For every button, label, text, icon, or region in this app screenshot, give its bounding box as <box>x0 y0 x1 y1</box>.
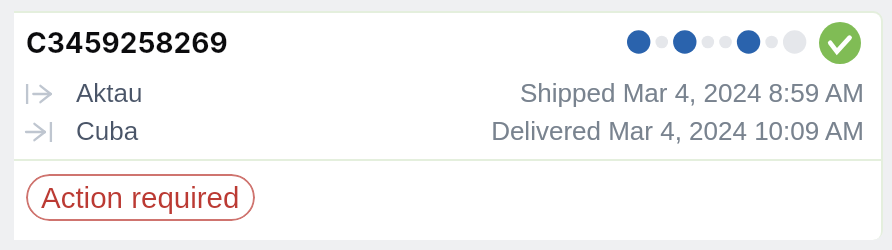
staticText: Delivered Mar 4, 2024 10:09 AM <box>491 116 864 145</box>
button[interactable]: Delivered <box>819 22 861 64</box>
staticText: Cuba <box>76 116 139 145</box>
staticText: C3459258269 <box>26 26 228 60</box>
staticText: Shipped Mar 4, 2024 8:59 AM <box>519 78 864 107</box>
staticText: Aktau <box>76 78 143 107</box>
staticText: Action required <box>41 181 240 214</box>
button[interactable]: C3459258269 <box>14 11 883 240</box>
button[interactable]: Action required <box>26 174 255 221</box>
